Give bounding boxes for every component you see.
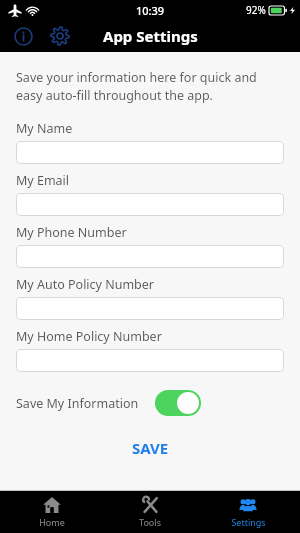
staticText: My Name	[16, 120, 73, 137]
staticText: Tools	[139, 516, 161, 528]
button[interactable]	[16, 245, 284, 268]
staticText: Settings	[231, 516, 266, 528]
staticText: My Auto Policy Number	[16, 276, 155, 293]
button[interactable]: Settings	[47, 23, 73, 49]
button[interactable]: Settings	[202, 491, 294, 533]
button[interactable]: Info	[10, 23, 36, 49]
button[interactable]	[16, 141, 284, 164]
button[interactable]: Tools	[104, 491, 196, 533]
button[interactable]: Home	[6, 491, 98, 533]
button[interactable]: Save My Information toggle	[155, 390, 201, 416]
button[interactable]	[16, 297, 284, 320]
button[interactable]: SAVE	[0, 438, 300, 458]
staticText: My Phone Number	[16, 224, 127, 241]
staticText: SAVE	[132, 438, 169, 458]
staticText: App Settings	[103, 26, 198, 46]
staticText: 10:39	[136, 3, 165, 18]
staticText: My Email	[16, 172, 70, 189]
button[interactable]	[16, 349, 284, 372]
staticText: My Home Policy Number	[16, 328, 162, 345]
staticText: 92%	[246, 3, 266, 17]
button[interactable]	[16, 193, 284, 216]
staticText: Save your information here for quick and…	[16, 69, 258, 104]
staticText: Home	[39, 516, 65, 528]
staticText: Save My Information	[16, 395, 139, 412]
